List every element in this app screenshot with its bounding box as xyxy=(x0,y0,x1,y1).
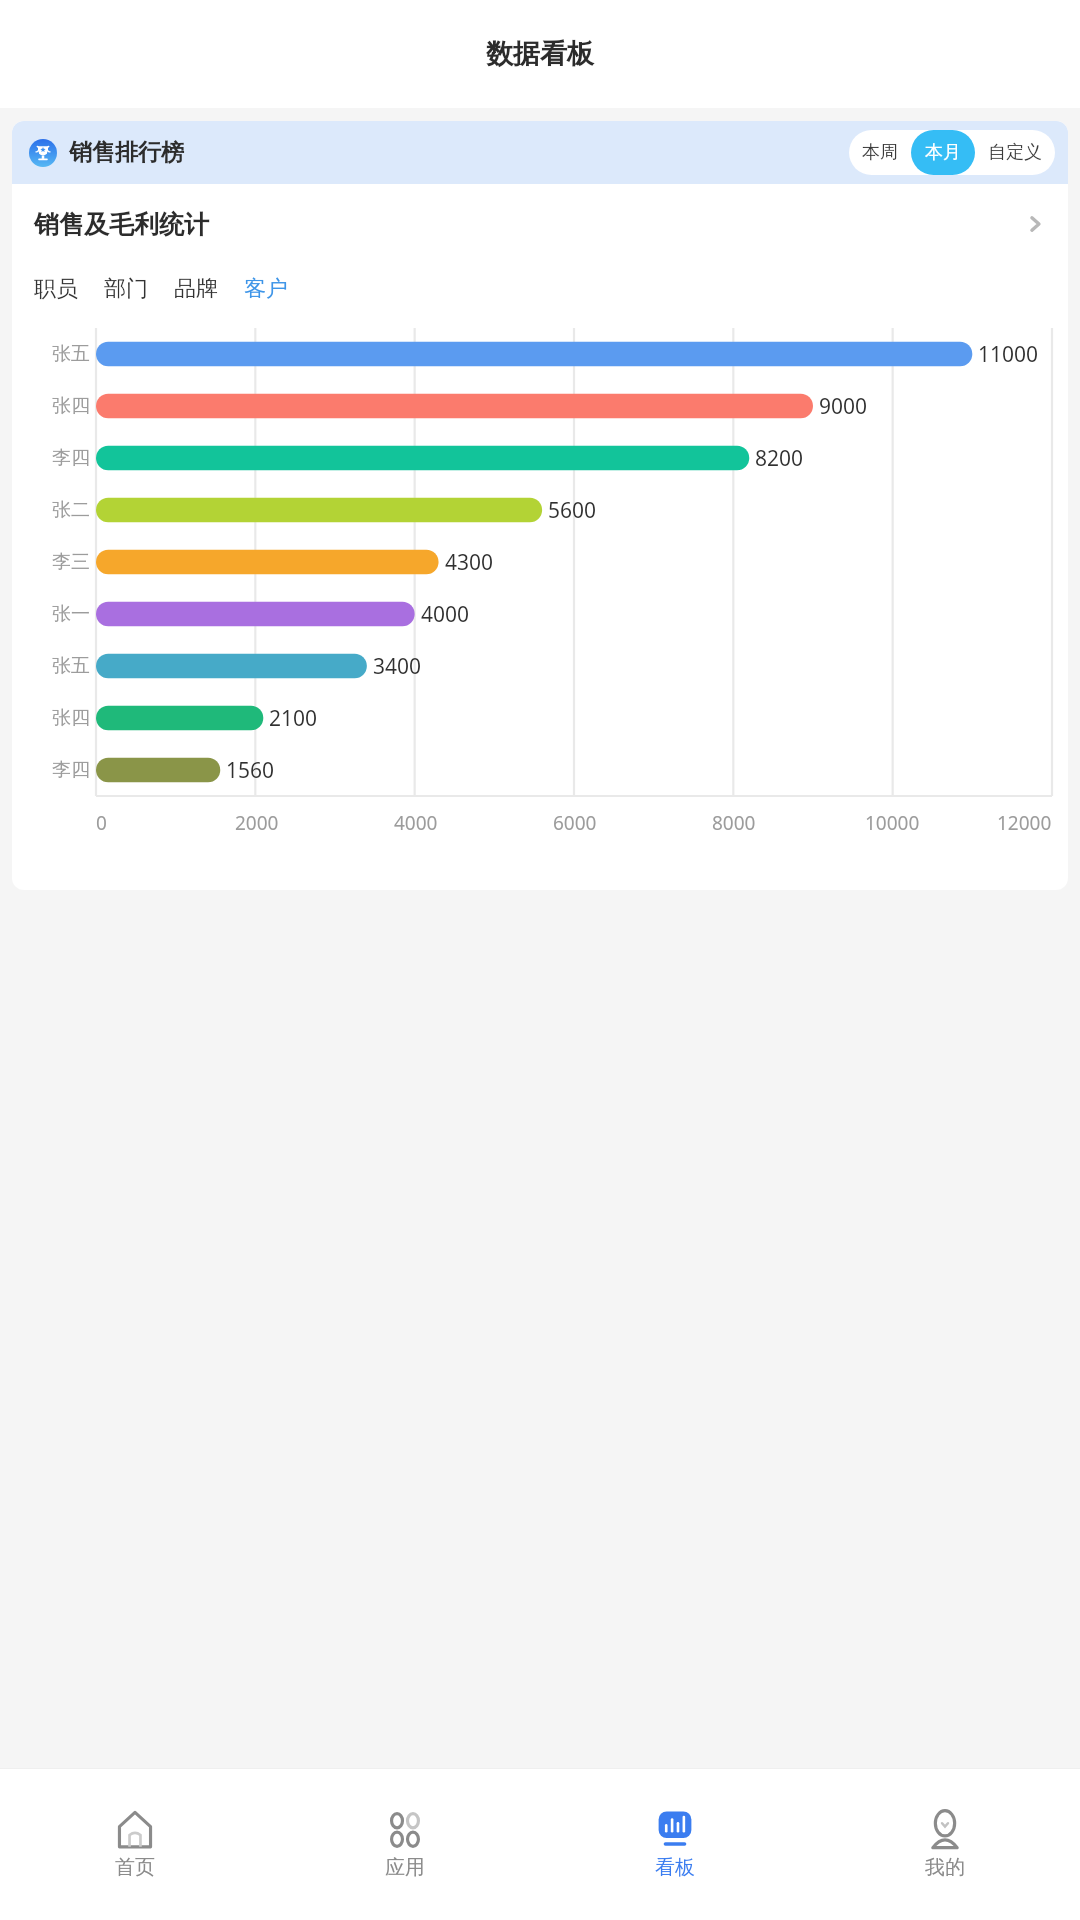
staticText: 销售及毛利统计 xyxy=(34,209,209,240)
staticText: 张四 xyxy=(52,394,90,418)
staticText: 首页 xyxy=(115,1855,155,1880)
staticText: 张一 xyxy=(52,602,90,626)
button[interactable]: 部门 xyxy=(104,264,174,314)
other: 查看详情 xyxy=(1024,213,1046,235)
staticText: 部门 xyxy=(104,275,148,303)
staticText: 0 xyxy=(96,810,107,836)
button[interactable]: 看板 xyxy=(540,1769,810,1920)
button[interactable]: 我的 xyxy=(810,1769,1080,1920)
staticText: 9000 xyxy=(819,392,868,421)
button[interactable]: 首页 xyxy=(0,1769,270,1920)
staticText: 李三 xyxy=(52,550,90,574)
staticText: 品牌 xyxy=(174,275,218,303)
staticText: 2000 xyxy=(235,810,279,836)
staticText: 客户 xyxy=(244,275,288,303)
staticText: 11000 xyxy=(978,340,1039,369)
staticText: 8000 xyxy=(712,810,756,836)
button[interactable]: 应用 xyxy=(270,1769,540,1920)
staticText: 5600 xyxy=(548,496,597,525)
staticText: 李四 xyxy=(52,446,90,470)
staticText: 看板 xyxy=(655,1855,695,1880)
staticText: 1560 xyxy=(226,756,275,785)
staticText: 张五 xyxy=(52,654,90,678)
button[interactable]: 客户 xyxy=(244,264,288,314)
staticText: 本周 xyxy=(862,141,898,164)
staticText: 应用 xyxy=(385,1855,425,1880)
button[interactable]: 本周 xyxy=(849,130,911,175)
button[interactable]: 品牌 xyxy=(174,264,244,314)
staticText: 我的 xyxy=(925,1855,965,1880)
staticText: 张二 xyxy=(52,498,90,522)
staticText: 8200 xyxy=(755,444,804,473)
staticText: 张四 xyxy=(52,706,90,730)
staticText: 10000 xyxy=(865,810,920,836)
staticText: 销售排行榜 xyxy=(69,138,184,167)
button[interactable]: 自定义 xyxy=(975,130,1055,175)
staticText: 3400 xyxy=(373,652,422,681)
staticText: 2100 xyxy=(269,704,318,733)
staticText: 4000 xyxy=(421,600,470,629)
button[interactable]: 职员 xyxy=(34,264,104,314)
button[interactable]: 销售及毛利统计 xyxy=(12,184,1068,264)
staticText: 职员 xyxy=(34,275,78,303)
staticText: 6000 xyxy=(553,810,597,836)
staticText: 数据看板 xyxy=(486,37,594,71)
button[interactable]: 本月 xyxy=(911,130,975,175)
staticText: 李四 xyxy=(52,758,90,782)
staticText: 4000 xyxy=(394,810,438,836)
staticText: 自定义 xyxy=(988,141,1042,164)
staticText: 4300 xyxy=(445,548,494,577)
staticText: 张五 xyxy=(52,342,90,366)
staticText: 12000 xyxy=(997,810,1052,836)
staticText: 本月 xyxy=(925,141,961,164)
